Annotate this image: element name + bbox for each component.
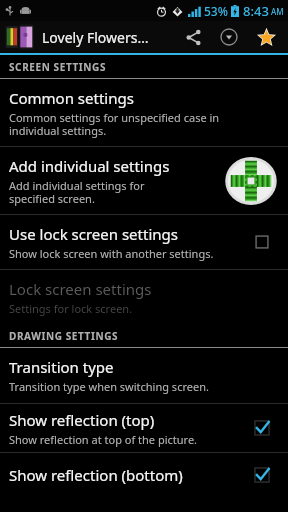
staticText: Lovely Flowers… (42, 28, 175, 47)
button[interactable]: Common settings (0, 79, 288, 146)
button[interactable]: Share (175, 21, 211, 53)
staticText: Add individual settings (9, 156, 170, 176)
button[interactable]: Transition type (0, 348, 288, 403)
staticText: AM (271, 6, 284, 17)
button[interactable]: Lock screen settings (0, 270, 288, 324)
staticText: Transition type (9, 357, 114, 377)
staticText: Settings for lock screen. (9, 301, 133, 316)
button[interactable]: Checked (244, 410, 280, 446)
button[interactable]: Checked (244, 457, 280, 493)
staticText: DRAWING SETTINGS (9, 329, 119, 343)
staticText: Lock screen settings (9, 279, 152, 299)
staticText: Show reflection (bottom) (9, 465, 183, 485)
button[interactable]: Show reflection (bottom) (0, 453, 288, 497)
staticText: Show reflection at top of the picture. (9, 432, 198, 447)
button[interactable]: Favorite (247, 21, 285, 53)
staticText: SCREEN SETTINGS (9, 60, 107, 74)
button[interactable]: Unchecked (244, 224, 280, 260)
staticText: Add individual settings for specified sc… (9, 178, 145, 206)
button[interactable]: More options (211, 21, 247, 53)
staticText: Show reflection (top) (9, 410, 155, 430)
button[interactable]: Add individual settings (222, 152, 280, 210)
button[interactable]: Add individual settings (0, 147, 288, 214)
staticText: Common settings (9, 88, 134, 108)
staticText: Use lock screen settings (9, 224, 178, 244)
button[interactable]: Show reflection (top) (0, 404, 288, 452)
staticText: Transition type when switching screen. (9, 379, 209, 394)
staticText: Common settings for unspecified case in … (9, 110, 220, 138)
staticText: 8:43 (243, 2, 269, 20)
button[interactable]: Use lock screen settings (0, 215, 288, 269)
staticText: Show lock screen with another settings. (9, 246, 214, 261)
staticText: 53% (204, 3, 228, 19)
